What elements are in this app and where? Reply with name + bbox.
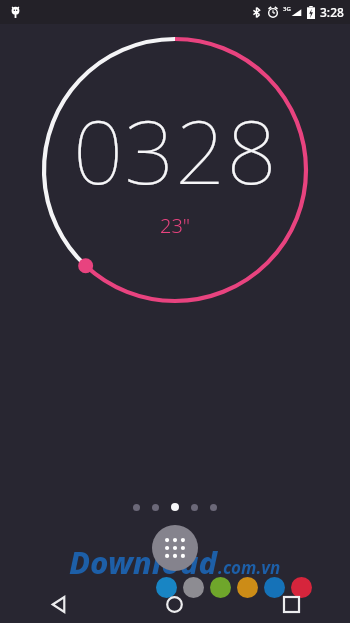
- staticText: 23": [160, 212, 191, 239]
- staticText: 3:28: [320, 4, 344, 20]
- button[interactable]: Home: [116, 585, 233, 623]
- button[interactable]: App 4: [237, 577, 258, 598]
- button[interactable]: Apps: [152, 525, 198, 571]
- button[interactable]: App 2: [183, 577, 204, 598]
- button[interactable]: App 6: [291, 577, 312, 598]
- button[interactable]: App 3: [210, 577, 231, 598]
- staticText: Download: [69, 541, 218, 583]
- staticText: 3G: [283, 5, 291, 13]
- button[interactable]: App 1: [156, 577, 177, 598]
- button[interactable]: Clock widget: [30, 25, 320, 315]
- button[interactable]: App 5: [264, 577, 285, 598]
- staticText: 0328: [73, 90, 278, 210]
- button[interactable]: Back: [0, 585, 116, 623]
- button[interactable]: Recents: [233, 585, 350, 623]
- staticText: .com.vn: [218, 556, 281, 579]
